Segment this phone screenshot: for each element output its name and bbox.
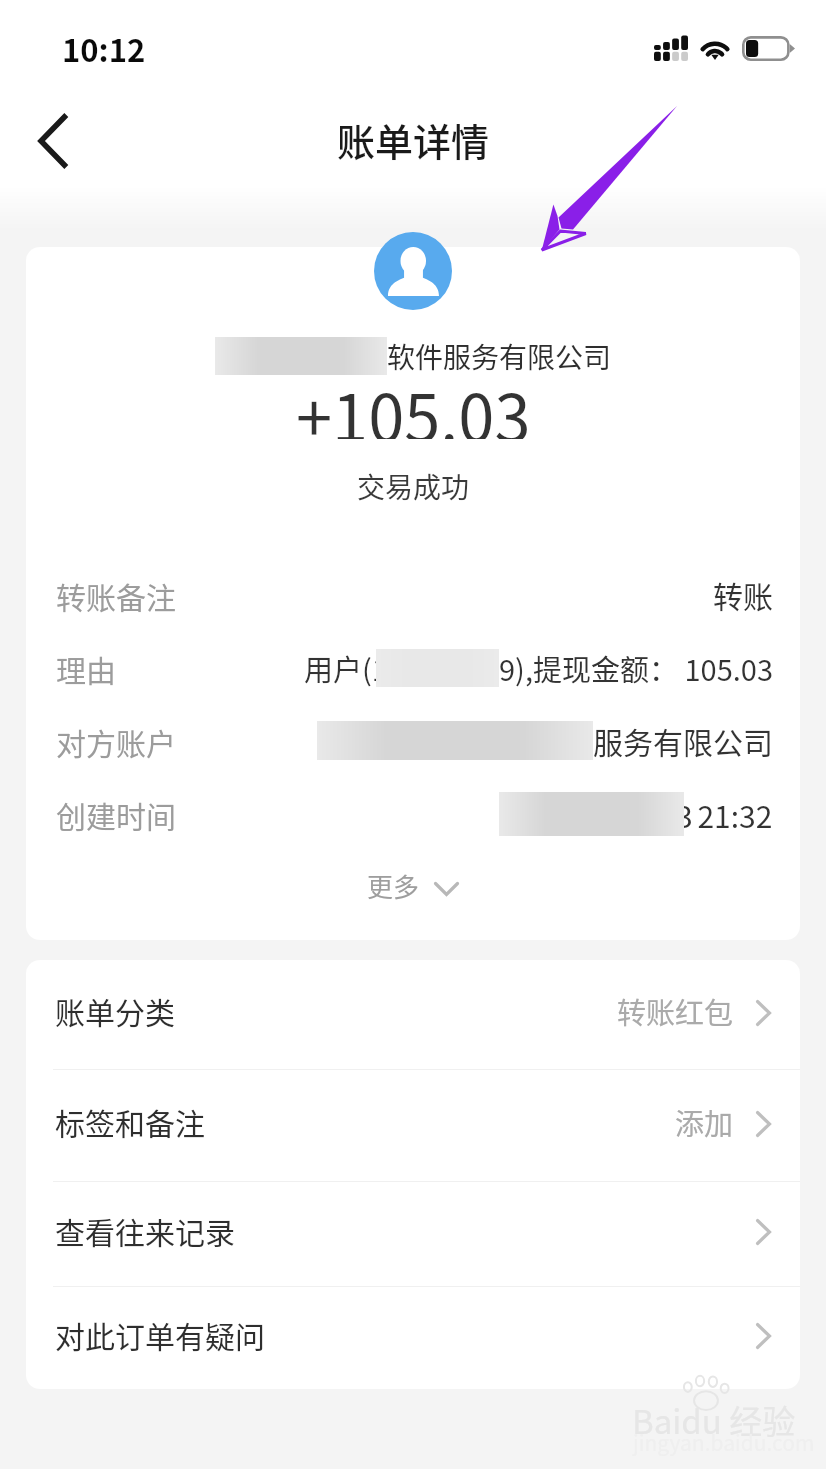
button[interactable]: 账单分类 <box>26 960 800 1070</box>
staticText: 账单分类 <box>55 989 175 1032</box>
staticText: 转账 <box>713 573 773 616</box>
staticText: 对此订单有疑问 <box>55 1313 265 1356</box>
staticText: 服务有限公司 <box>593 719 773 762</box>
staticText: 查看往来记录 <box>55 1209 235 1252</box>
staticText: 转账备注 <box>56 574 176 617</box>
staticText: 创建时间 <box>56 793 176 836</box>
staticText: 交易成功 <box>357 466 470 506</box>
button[interactable]: 标签和备注 <box>26 1070 800 1182</box>
button[interactable]: 查看往来记录 <box>26 1182 800 1287</box>
staticText: +105.03 <box>296 367 531 439</box>
staticText: 更多 <box>367 867 420 905</box>
button[interactable]: Back <box>20 108 86 174</box>
staticText: 账单详情 <box>337 112 490 167</box>
staticText: 添加 <box>675 1101 734 1143</box>
button[interactable]: 对此订单有疑问 <box>26 1287 800 1389</box>
staticText: 9),提现金额： 105.03 <box>499 647 773 689</box>
staticText: Baidu 经验 <box>632 1396 796 1444</box>
staticText: 对方账户 <box>56 720 176 763</box>
staticText: 转账红包 <box>617 990 734 1032</box>
staticText: 理由 <box>56 647 116 690</box>
staticText: 10:12 <box>62 26 146 71</box>
staticText: 21:32 <box>684 793 773 836</box>
button[interactable]: 更多 <box>26 858 800 918</box>
staticText: jingyan.baidu.com <box>633 1427 815 1457</box>
staticText: 用户(1 <box>304 647 388 689</box>
staticText: 软件服务有限公司 <box>387 336 612 376</box>
staticText: 3 <box>676 793 693 836</box>
staticText: 标签和备注 <box>55 1100 205 1143</box>
